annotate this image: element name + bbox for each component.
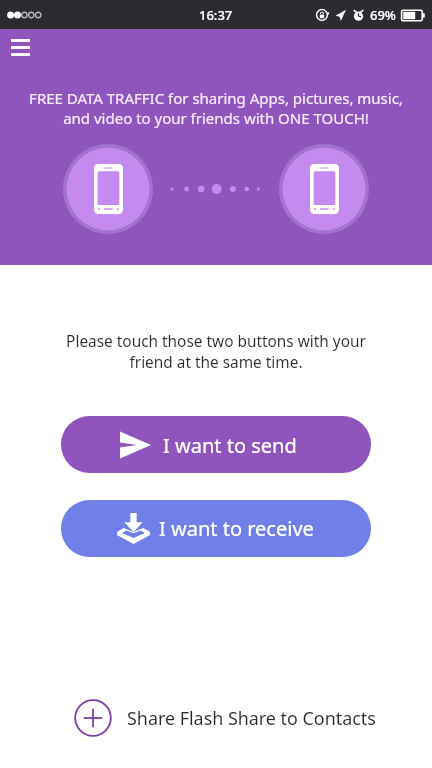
button[interactable]: I want to receive [61, 500, 371, 557]
staticText: Share Flash Share to Contacts [127, 706, 376, 730]
staticText: 69% [370, 6, 396, 24]
button[interactable]: I want to send [61, 416, 371, 473]
staticText: I want to send [163, 432, 297, 459]
staticText: Please touch those two buttons with your… [50, 331, 382, 372]
staticText: I want to receive [159, 515, 314, 542]
staticText: 16:37 [199, 6, 233, 24]
button[interactable]: Menu [2, 29, 39, 66]
button[interactable]: Share Flash Share to Contacts [0, 685, 432, 751]
staticText: FREE DATA TRAFFIC for sharing Apps, pict… [20, 88, 412, 128]
